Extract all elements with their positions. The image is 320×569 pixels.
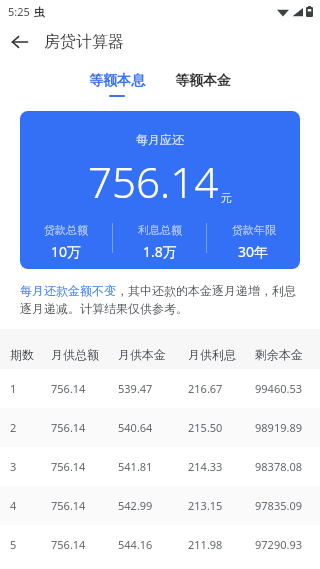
staticText: 216.67 — [188, 381, 223, 396]
staticText: 756.14 — [51, 459, 86, 474]
button[interactable]: 4 — [0, 486, 320, 525]
button[interactable]: 1 — [0, 369, 320, 408]
staticText: 月供本金 — [118, 347, 166, 362]
staticText: 215.50 — [188, 420, 223, 435]
button[interactable]: 每月应还 — [20, 111, 300, 269]
staticText: 98919.89 — [255, 420, 302, 435]
staticText: 211.98 — [188, 537, 223, 552]
staticText: 542.99 — [118, 498, 153, 513]
staticText: 月供利息 — [188, 347, 236, 362]
staticText: 541.81 — [118, 459, 153, 474]
staticText: 等额本息 — [89, 72, 145, 90]
staticText: 99460.53 — [255, 381, 302, 396]
button[interactable]: 等额本息 — [81, 68, 153, 101]
button[interactable]: Back — [0, 22, 40, 62]
staticText: 98378.08 — [255, 459, 302, 474]
staticText: 30年 — [238, 242, 269, 261]
button[interactable]: 等额本金 — [167, 68, 239, 101]
staticText: 月供总额 — [51, 347, 99, 362]
staticText: 97835.09 — [255, 498, 302, 513]
staticText: 5 — [10, 537, 17, 552]
staticText: 4 — [10, 498, 17, 513]
staticText: 540.64 — [118, 420, 153, 435]
button[interactable]: 2 — [0, 408, 320, 447]
staticText: 房贷计算器 — [44, 32, 124, 52]
staticText: 3 — [10, 459, 17, 474]
staticText: 等额本金 — [175, 72, 231, 90]
staticText: 756.14 — [51, 420, 86, 435]
staticText: 97290.93 — [255, 537, 302, 552]
staticText: 1.8万 — [143, 242, 177, 261]
staticText: 756.14 — [88, 153, 219, 210]
button[interactable]: 3 — [0, 447, 320, 486]
staticText: 539.47 — [118, 381, 153, 396]
staticText: 1 — [10, 381, 17, 396]
staticText: 元 — [221, 191, 232, 205]
staticText: 2 — [10, 420, 17, 435]
staticText: 贷款年限 — [232, 223, 276, 237]
staticText: 756.14 — [51, 537, 86, 552]
staticText: 756.14 — [51, 381, 86, 396]
staticText: 544.16 — [118, 537, 153, 552]
staticText: 每月应还 — [136, 132, 184, 147]
button[interactable]: 5 — [0, 525, 320, 564]
staticText: 期数 — [10, 347, 34, 362]
staticText: 214.33 — [188, 459, 223, 474]
staticText: 虫 — [34, 5, 45, 19]
staticText: 10万 — [51, 242, 82, 261]
staticText: 5:25 — [8, 4, 30, 19]
staticText: 利息总额 — [138, 223, 182, 237]
staticText: 每月还款金额不变，其中还款的本金逐月递增，利息逐月递减。计算结果仅供参考。 — [20, 283, 300, 317]
staticText: 213.15 — [188, 498, 223, 513]
staticText: 贷款总额 — [44, 223, 88, 237]
staticText: 756.14 — [51, 498, 86, 513]
staticText: 剩余本金 — [255, 347, 303, 362]
